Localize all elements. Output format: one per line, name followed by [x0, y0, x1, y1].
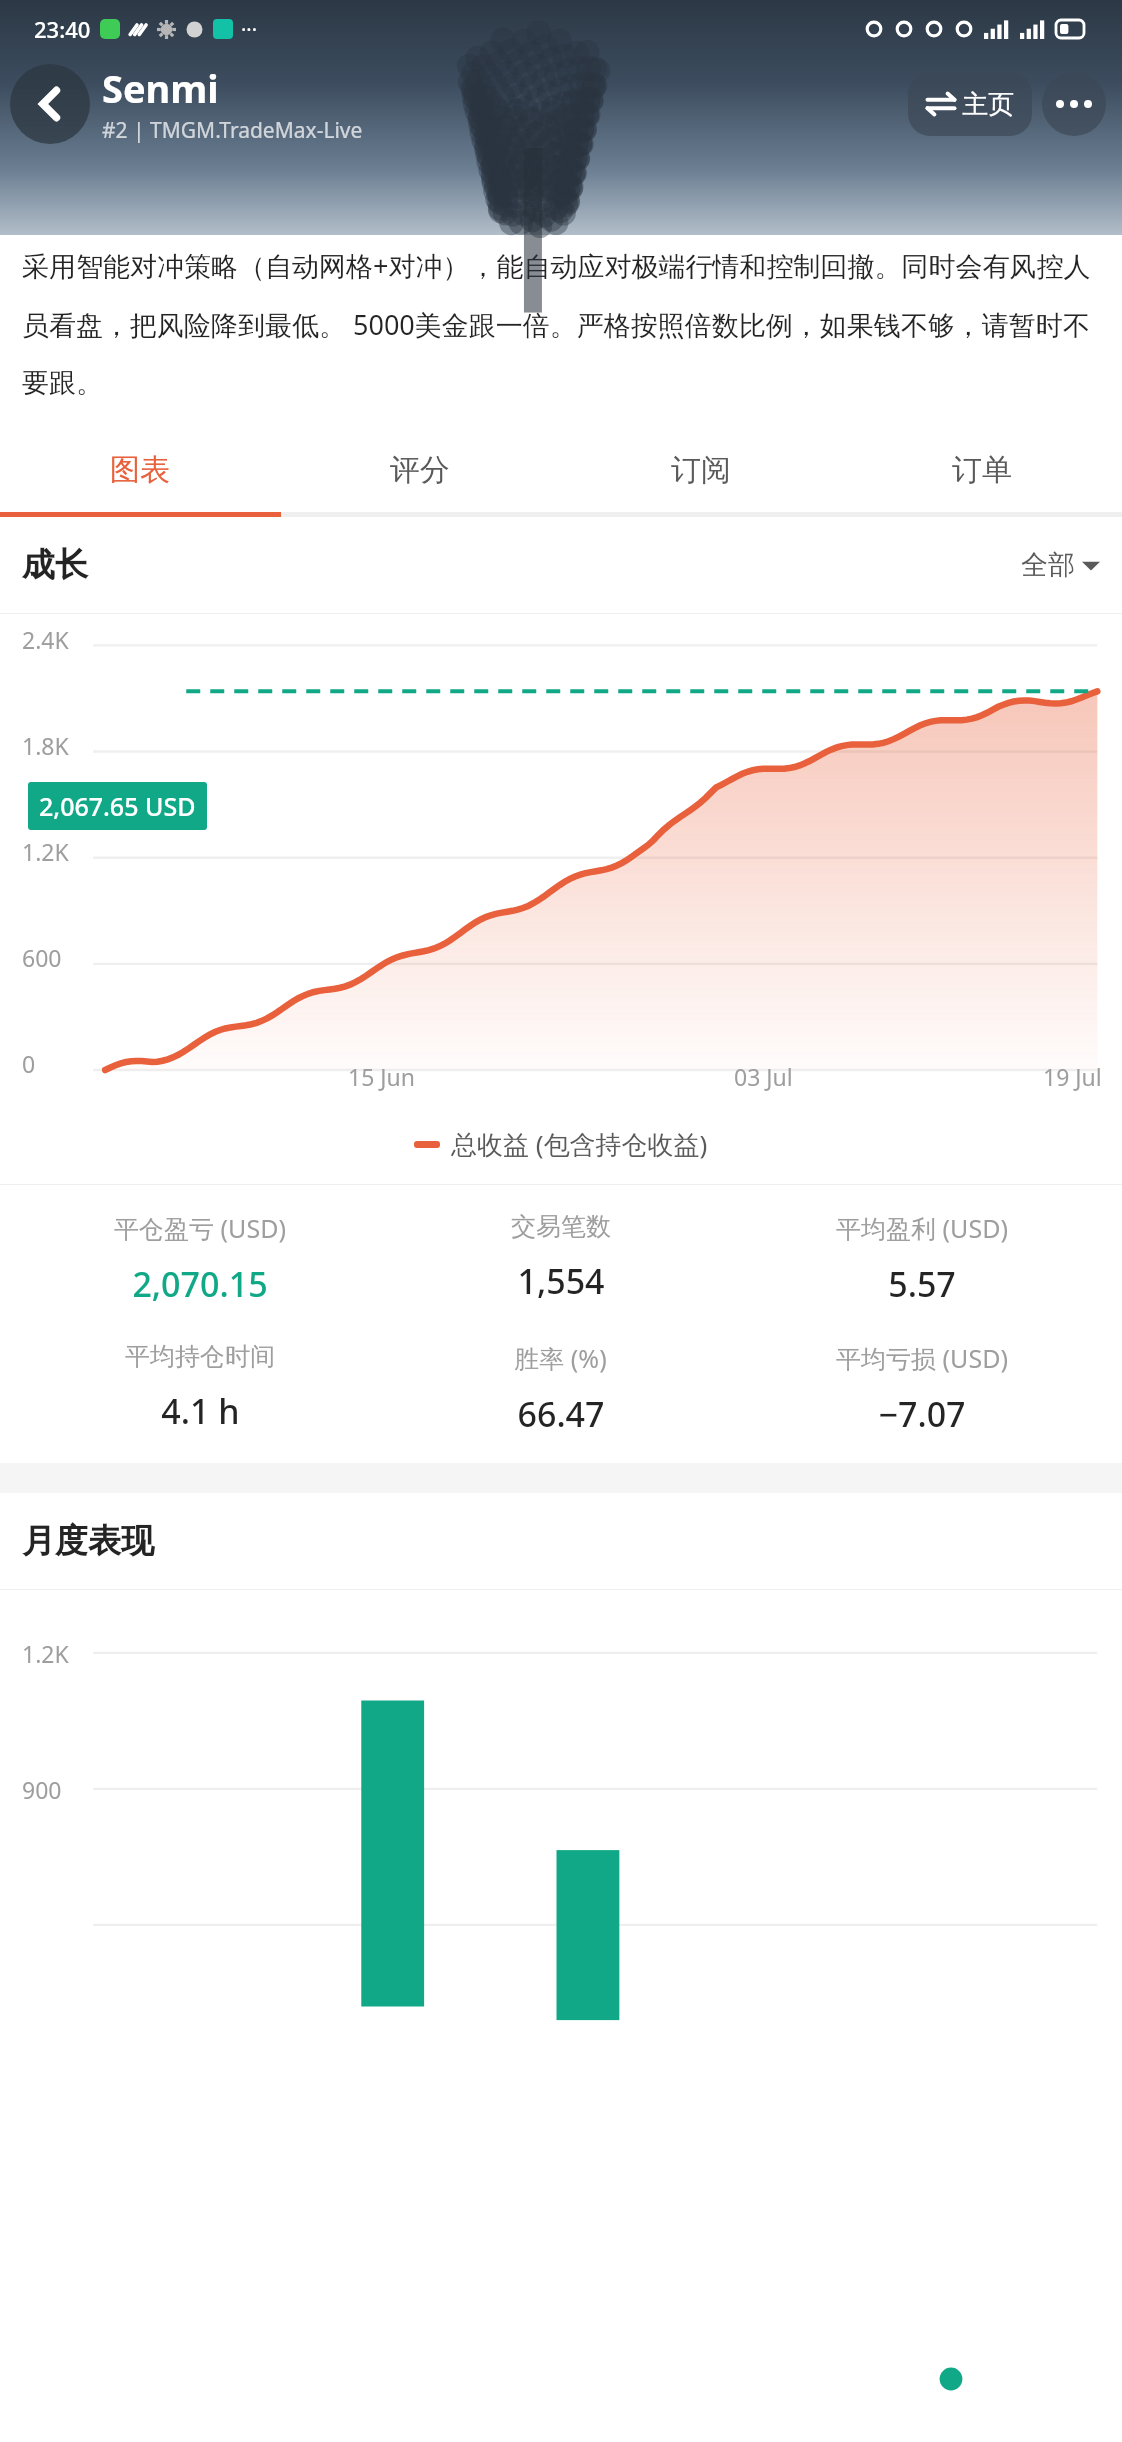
staticText: 总收益 (包含持仓收益) [451, 1126, 708, 1162]
staticText: ··· [241, 16, 258, 43]
staticText: 03 Jul [734, 1061, 793, 1092]
staticText: 1.8K [22, 730, 69, 761]
staticText: 图表 [110, 451, 170, 489]
staticText: 平均持仓时间 [125, 1341, 275, 1372]
staticText: 0 [22, 1048, 36, 1079]
staticText: 4.1 h [161, 1388, 240, 1434]
staticText: 2,067.65 USD [39, 789, 196, 823]
staticText: 23:40 [34, 14, 91, 44]
staticText: 主页 [962, 88, 1014, 121]
staticText: 19 Jul [1043, 1061, 1102, 1092]
button[interactable]: 图表 [0, 428, 280, 512]
staticText: 交易笔数 [511, 1211, 611, 1242]
staticText: Senmi [102, 62, 219, 114]
staticText: 评分 [390, 451, 450, 489]
staticText: 15 Jun [348, 1061, 415, 1092]
staticText: 1.2K [22, 836, 69, 867]
staticText: 1.2K [22, 1638, 69, 1669]
staticText: 5.57 [888, 1261, 956, 1307]
staticText: 平均盈利 (USD) [836, 1211, 1008, 1245]
staticText: 月度表现 [22, 1520, 154, 1562]
staticText: 平仓盈亏 (USD) [114, 1211, 286, 1245]
button[interactable]: 订单 [841, 428, 1122, 512]
staticText: 订单 [952, 451, 1012, 489]
staticText: 1,554 [517, 1258, 605, 1304]
staticText: 66.47 [517, 1391, 605, 1437]
staticText: 全部 [1021, 548, 1075, 582]
staticText: 胜率 (%) [514, 1341, 607, 1375]
staticText: 2,070.15 [132, 1261, 268, 1307]
button[interactable]: More options [1042, 72, 1106, 136]
button[interactable]: 订阅 [560, 428, 841, 512]
staticText: 采用智能对冲策略（自动网格+对冲），能自动应对极端行情和控制回撤。同时会有风控人… [22, 247, 1100, 400]
staticText: 成长 [22, 544, 88, 586]
staticText: −7.07 [878, 1391, 966, 1437]
button[interactable]: Back [10, 64, 90, 144]
staticText: 2.4K [22, 624, 69, 655]
staticText: 平均亏损 (USD) [836, 1341, 1008, 1375]
staticText: 600 [22, 942, 62, 973]
staticText: 订阅 [671, 451, 731, 489]
staticText: #2 | TMGM.TradeMax-Live [102, 116, 363, 145]
staticText: 900 [22, 1774, 62, 1805]
button[interactable]: 评分 [280, 428, 560, 512]
button[interactable]: 主页 [908, 72, 1032, 136]
button[interactable]: 全部 [1021, 548, 1100, 582]
